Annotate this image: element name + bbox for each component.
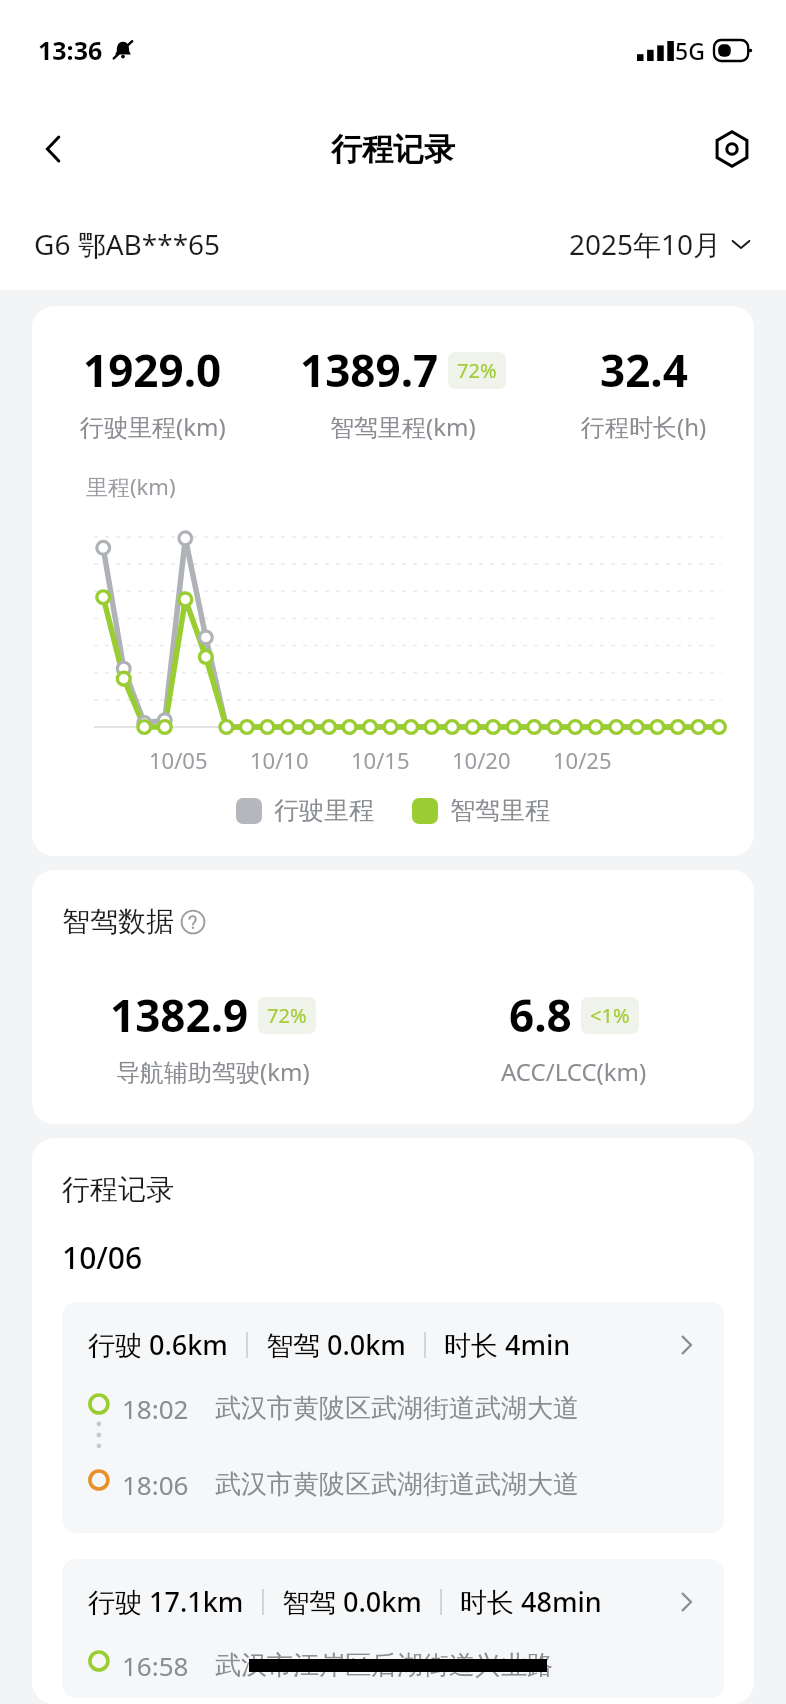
- staticText: 行驶里程(km): [80, 410, 226, 443]
- staticText: 武汉市黄陂区武湖街道武湖大道: [215, 1468, 579, 1501]
- staticText: 2025年10月: [569, 225, 722, 263]
- staticText: 时长 4min: [444, 1326, 571, 1363]
- staticText: 智驾 0.0km: [282, 1583, 422, 1620]
- staticText: 16:58: [122, 1648, 189, 1683]
- staticText: 72%: [267, 1002, 307, 1029]
- button[interactable]: 行驶 0.6km: [62, 1302, 724, 1533]
- staticText: 导航辅助驾驶(km): [116, 1055, 310, 1088]
- staticText: 行驶 17.1km: [88, 1583, 244, 1620]
- button[interactable]: Settings: [704, 121, 760, 177]
- staticText: 行程时长(h): [581, 410, 707, 443]
- staticText: 10/20: [452, 745, 511, 775]
- staticText: ACC/LCC(km): [501, 1055, 647, 1088]
- button[interactable]: 行驶 17.1km: [62, 1559, 724, 1698]
- staticText: 1382.9: [110, 985, 249, 1045]
- staticText: 行程记录: [331, 130, 455, 169]
- staticText: 5G: [675, 35, 705, 66]
- staticText: 1929.0: [83, 340, 222, 400]
- staticText: 时长 48min: [460, 1583, 602, 1620]
- staticText: 18:02: [122, 1391, 189, 1426]
- staticText: 里程(km): [86, 471, 176, 501]
- staticText: <1%: [590, 1002, 630, 1029]
- staticText: 1389.7: [300, 340, 439, 400]
- staticText: 武汉市江岸区后湖街道兴业路: [215, 1649, 553, 1682]
- staticText: 智驾里程: [450, 795, 550, 826]
- staticText: 10/05: [149, 745, 208, 775]
- staticText: 智驾 0.0km: [266, 1326, 406, 1363]
- staticText: 18:06: [122, 1467, 189, 1502]
- staticText: 行驶里程: [274, 795, 374, 826]
- staticText: 行程记录: [62, 1172, 174, 1207]
- staticText: 32.4: [600, 340, 688, 400]
- button[interactable]: Back: [26, 121, 82, 177]
- staticText: 72%: [457, 357, 497, 384]
- button[interactable]: 智驾数据: [62, 904, 206, 939]
- staticText: 10/06: [62, 1237, 143, 1278]
- staticText: 13:36: [38, 33, 103, 67]
- staticText: 10/15: [351, 745, 410, 775]
- staticText: 10/10: [250, 745, 309, 775]
- staticText: 6.8: [509, 985, 572, 1045]
- staticText: 10/25: [553, 745, 612, 775]
- staticText: 武汉市黄陂区武湖街道武湖大道: [215, 1392, 579, 1425]
- staticText: 智驾里程(km): [330, 410, 476, 443]
- staticText: 行驶 0.6km: [88, 1326, 228, 1363]
- staticText: 智驾数据: [62, 904, 174, 939]
- button[interactable]: 2025年10月: [569, 225, 752, 263]
- staticText: G6 鄂AB***65: [34, 225, 221, 263]
